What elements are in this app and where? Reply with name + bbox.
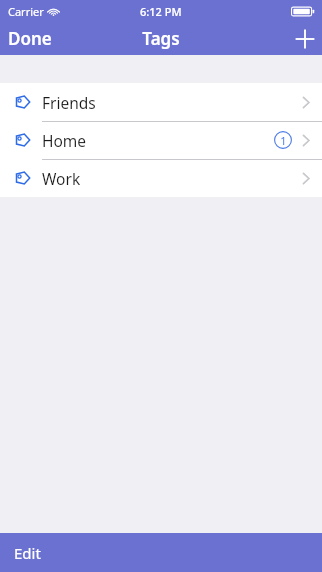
staticText: Friends (42, 92, 96, 113)
staticText: Carrier (8, 4, 44, 19)
button[interactable]: Home (0, 121, 322, 159)
staticText: 6:12 PM (140, 4, 182, 19)
staticText: Tags (142, 27, 180, 50)
staticText: Edit (14, 543, 41, 563)
button[interactable]: Friends (0, 83, 322, 121)
staticText: Done (8, 27, 52, 50)
button[interactable]: Edit (0, 533, 55, 572)
staticText: Home (42, 130, 87, 151)
staticText: Work (42, 168, 81, 189)
staticText: 1 (280, 133, 287, 148)
button[interactable]: Work (0, 159, 322, 197)
button[interactable]: Add tag (288, 22, 322, 55)
button[interactable]: Done (0, 22, 60, 55)
